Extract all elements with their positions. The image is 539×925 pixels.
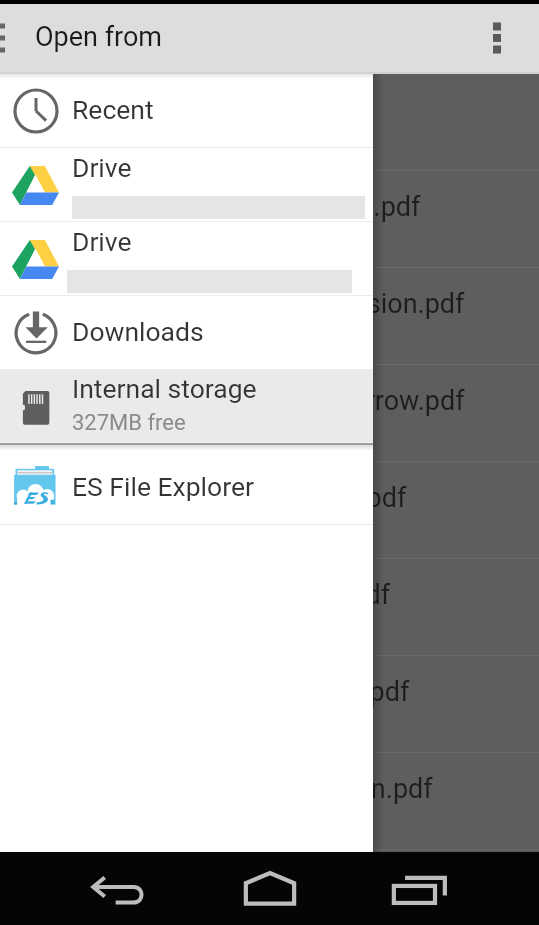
- button[interactable]: Recent: [0, 74, 373, 147]
- staticText: Downloads: [72, 316, 204, 347]
- button[interactable]: Drive: [0, 148, 373, 221]
- staticText: Recent: [72, 94, 154, 125]
- button[interactable]: Navigation drawer: [0, 8, 5, 68]
- staticText: 327MB free: [72, 410, 186, 436]
- button[interactable]: Recent apps: [384, 855, 452, 923]
- staticText: Drive: [72, 152, 132, 183]
- button[interactable]: Back: [84, 855, 152, 923]
- button[interactable]: Drive: [0, 222, 373, 295]
- button[interactable]: due_tomorrow.pdf: [0, 365, 539, 462]
- button[interactable]: lease_extension.pdf: [0, 268, 539, 365]
- button[interactable]: annual_summary.pdf: [0, 74, 539, 171]
- staticText: Internal storage: [72, 373, 257, 404]
- staticText: due_tomorrow.pdf: [246, 385, 465, 417]
- button[interactable]: presentation.pdf: [0, 753, 539, 850]
- button[interactable]: ES File Explorer: [0, 450, 373, 524]
- staticText: annual_summary.pdf: [108, 94, 360, 126]
- button[interactable]: receipt.pdf: [0, 559, 539, 656]
- staticText: Open from: [35, 21, 163, 53]
- staticText: ES File Explorer: [72, 471, 254, 502]
- staticText: receipt.pdf: [261, 579, 391, 611]
- staticText: certificate.pdf: [253, 191, 421, 223]
- button[interactable]: Internal storage: [0, 370, 373, 442]
- button[interactable]: Downloads: [0, 296, 373, 369]
- staticText: Drive: [72, 226, 132, 257]
- button[interactable]: notes.pdf: [0, 462, 539, 559]
- button[interactable]: certificate.pdf: [0, 171, 539, 268]
- button[interactable]: manual.pdf: [0, 656, 539, 753]
- staticText: manual.pdf: [273, 676, 410, 708]
- staticText: notes.pdf: [292, 482, 407, 514]
- staticText: presentation.pdf: [235, 773, 433, 805]
- staticText: lease_extension.pdf: [225, 288, 465, 320]
- button[interactable]: More options: [473, 14, 521, 62]
- button[interactable]: Home: [236, 855, 304, 923]
